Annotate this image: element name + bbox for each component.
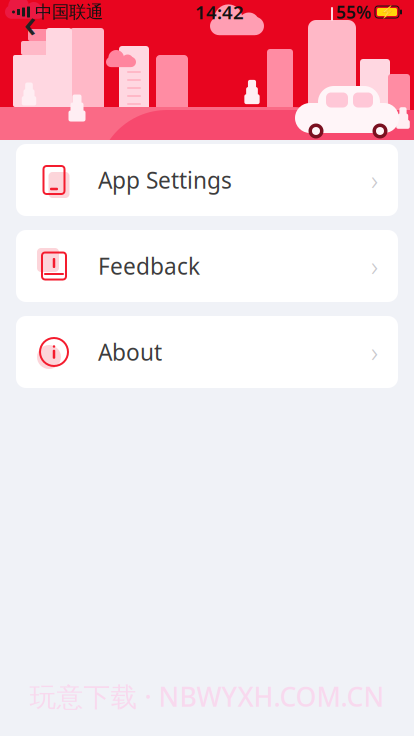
button[interactable]: Feedback bbox=[16, 230, 398, 302]
staticText: About bbox=[98, 337, 162, 367]
staticText: Feedback bbox=[98, 251, 200, 281]
button[interactable]: About bbox=[16, 316, 398, 388]
staticText: 中国联通 bbox=[35, 1, 103, 23]
staticText: › bbox=[371, 162, 378, 198]
staticText: › bbox=[371, 248, 378, 284]
button[interactable]: Back bbox=[8, 0, 52, 44]
staticText: ‹ bbox=[23, 0, 36, 48]
staticText: › bbox=[371, 334, 378, 370]
staticText: 55% bbox=[336, 0, 371, 23]
staticText: 14:42 bbox=[195, 0, 244, 24]
staticText: ⚡ bbox=[379, 5, 394, 19]
button[interactable]: App Settings bbox=[16, 144, 398, 216]
staticText: 玩意下载 · NBWYXH.COM.CN bbox=[29, 679, 384, 714]
staticText: App Settings bbox=[98, 165, 232, 195]
